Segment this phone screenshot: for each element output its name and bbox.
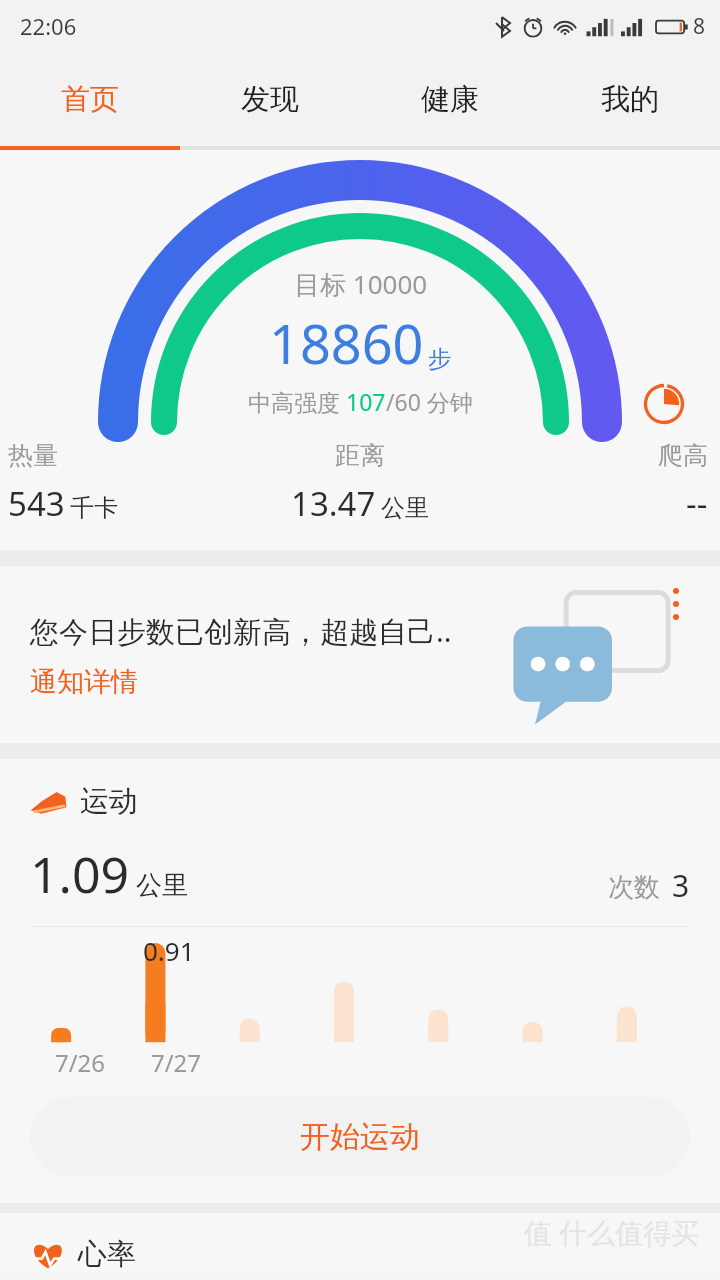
staticText: 中高强度 xyxy=(248,386,346,417)
staticText: 22:06 xyxy=(20,11,77,41)
staticText: 首页 xyxy=(61,81,119,118)
button[interactable]: 我的 xyxy=(540,52,720,146)
staticText: 107 xyxy=(346,386,386,417)
staticText: 健康 xyxy=(421,81,479,118)
staticText: 心率 xyxy=(78,1236,136,1273)
staticText: 3 xyxy=(672,865,690,906)
button[interactable]: 通知详情 xyxy=(30,665,138,699)
staticText: /60 分钟 xyxy=(386,386,473,417)
staticText: 千卡 xyxy=(70,493,118,523)
button[interactable]: 运动 xyxy=(30,783,720,820)
button[interactable]: 目标 10000 xyxy=(0,150,720,550)
staticText: 距离 xyxy=(335,440,385,471)
button[interactable]: 发现 xyxy=(180,52,360,146)
staticText: 13.47 xyxy=(291,481,376,526)
staticText: 您今日步数已创新高，超越自己.. xyxy=(30,611,452,651)
staticText: 爬高 xyxy=(658,440,708,471)
button[interactable]: 热量 xyxy=(8,440,240,526)
staticText: 发现 xyxy=(241,81,299,118)
button[interactable]: More options xyxy=(656,588,696,628)
staticText: 18860 xyxy=(269,306,424,380)
button[interactable]: 开始运动 xyxy=(30,1097,690,1177)
staticText: 次数 xyxy=(608,871,660,904)
staticText: 0.91 xyxy=(143,933,195,968)
staticText: 目标 10000 xyxy=(294,266,428,302)
button[interactable]: 健康 xyxy=(360,52,540,146)
staticText: 543 xyxy=(8,481,65,526)
staticText: -- xyxy=(686,481,708,526)
staticText: 7/26 xyxy=(30,1046,130,1079)
button[interactable]: Statistics xyxy=(638,378,690,430)
button[interactable]: 距离 xyxy=(240,440,480,526)
staticText: 8 xyxy=(693,12,706,41)
button[interactable]: 您今日步数已创新高，超越自己.. xyxy=(0,566,720,743)
staticText: 热量 xyxy=(8,440,58,471)
staticText: 值 什么值得买 xyxy=(524,1213,700,1251)
button[interactable]: 爬高 xyxy=(480,440,708,526)
staticText: 1.09 xyxy=(30,840,130,908)
button[interactable]: 首页 xyxy=(0,52,180,146)
staticText: 我的 xyxy=(601,81,659,118)
staticText: 公里 xyxy=(136,869,188,902)
staticText: 开始运动 xyxy=(300,1118,420,1156)
button[interactable]: 心率 xyxy=(30,1236,136,1273)
staticText: 公里 xyxy=(381,493,429,523)
staticText: 7/27 xyxy=(130,1046,222,1079)
staticText: 运动 xyxy=(80,783,138,820)
staticText: 步 xyxy=(428,344,452,374)
